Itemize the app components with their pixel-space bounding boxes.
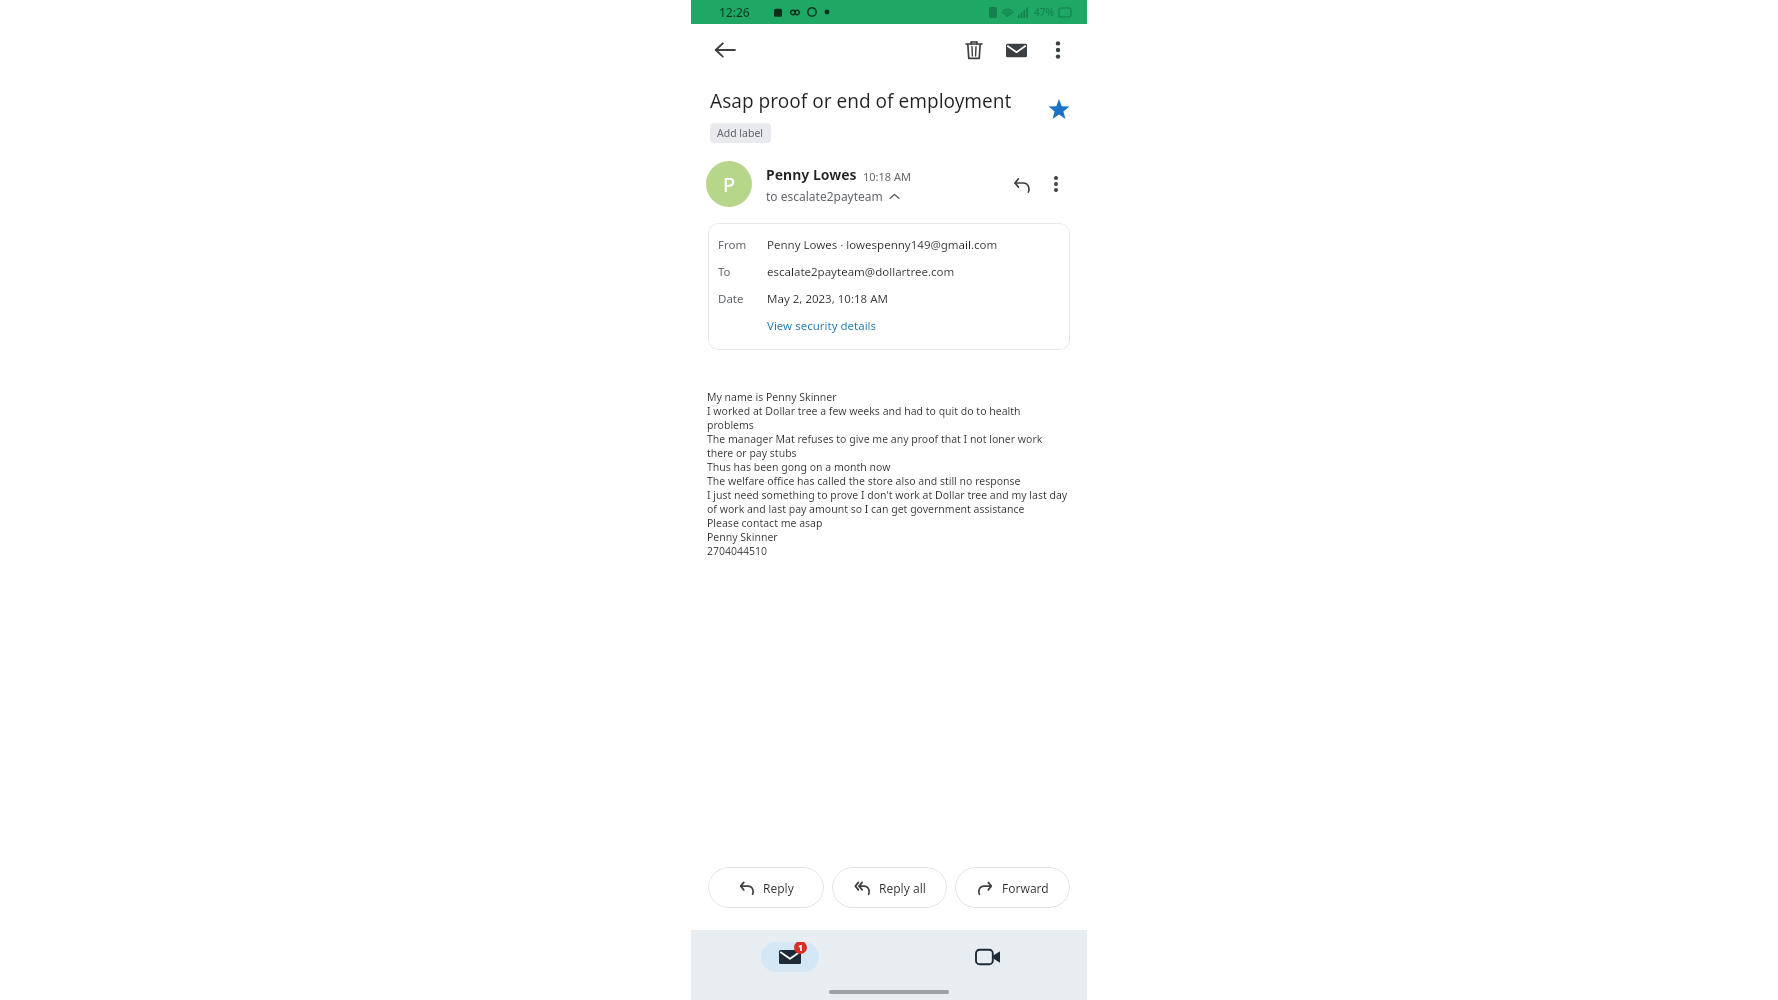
- staticText: Forward: [1002, 880, 1049, 896]
- button[interactable]: Meet: [889, 930, 1087, 984]
- staticText: My name is Penny Skinner: [707, 390, 837, 404]
- staticText: Add label: [717, 126, 764, 140]
- button[interactable]: Reply all: [832, 867, 947, 908]
- staticText: May 2, 2023, 10:18 AM: [767, 291, 888, 307]
- staticText: 1: [798, 942, 803, 953]
- staticText: of work and last pay amount so I can get…: [707, 502, 1025, 516]
- button[interactable]: Add label: [710, 123, 771, 143]
- button[interactable]: Reply: [1002, 165, 1040, 203]
- staticText: Penny Lowes: [766, 165, 857, 184]
- staticText: Reply all: [879, 880, 926, 896]
- button[interactable]: Back: [705, 30, 745, 70]
- button[interactable]: From: [708, 223, 1070, 350]
- button[interactable]: to escalate2payteam: [766, 188, 900, 204]
- button[interactable]: More options: [1040, 168, 1072, 200]
- button[interactable]: More options: [1037, 29, 1079, 71]
- button[interactable]: Mark unread: [995, 29, 1037, 71]
- staticText: Thus has been gong on a month now: [707, 460, 891, 474]
- staticText: Date: [718, 291, 744, 307]
- button[interactable]: View security details: [767, 318, 877, 334]
- staticText: escalate2payteam@dollartree.com: [767, 264, 955, 280]
- staticText: From: [718, 237, 747, 253]
- staticText: 10:18 AM: [863, 169, 911, 184]
- staticText: 12:26: [719, 4, 750, 20]
- staticText: 2704044510: [707, 544, 768, 558]
- staticText: Penny Lowes · lowespenny149@gmail.com: [767, 237, 998, 253]
- button[interactable]: Forward: [955, 867, 1070, 908]
- button[interactable]: Starred: [1041, 92, 1077, 128]
- staticText: I worked at Dollar tree a few weeks and …: [707, 404, 1021, 418]
- staticText: to escalate2payteam: [766, 188, 883, 204]
- staticText: The manager Mat refuses to give me any p…: [707, 432, 1043, 446]
- staticText: Penny Skinner: [707, 530, 778, 544]
- staticText: Please contact me asap: [707, 516, 823, 530]
- staticText: I just need something to prove I don't w…: [707, 488, 1068, 502]
- button[interactable]: Delete: [953, 29, 995, 71]
- staticText: Reply: [763, 880, 794, 896]
- staticText: problems: [707, 418, 754, 432]
- staticText: To: [718, 264, 731, 280]
- staticText: 47%: [1034, 5, 1054, 19]
- staticText: P: [723, 171, 736, 198]
- staticText: The welfare office has called the store …: [707, 474, 1021, 488]
- staticText: Asap proof or end of employment: [710, 88, 1012, 114]
- button[interactable]: Reply: [708, 867, 824, 908]
- staticText: there or pay stubs: [707, 446, 797, 460]
- button[interactable]: Mail: [691, 930, 889, 984]
- button[interactable]: P: [706, 161, 752, 207]
